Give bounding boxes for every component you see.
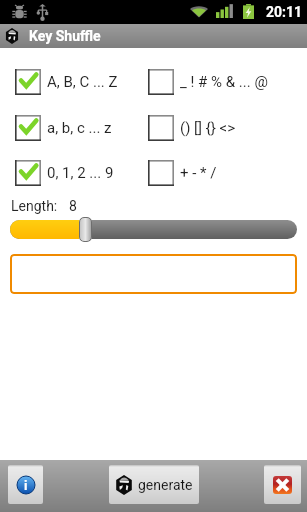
button[interactable]: A, B, C ... Z (15, 69, 118, 95)
staticText: i (24, 478, 28, 493)
staticText: Key Shuffle (29, 28, 101, 44)
button[interactable]: Length slider (79, 217, 92, 242)
button[interactable]: a, b, c ... z (15, 115, 112, 141)
staticText: _ ! # % & ... @ (180, 73, 268, 91)
staticText: a, b, c ... z (47, 119, 112, 137)
button[interactable]: Close (264, 465, 301, 504)
staticText: + - * / (180, 164, 217, 182)
button[interactable]: _ ! # % & ... @ (148, 69, 268, 95)
staticText: () [] {} <> (180, 119, 236, 137)
staticText: Length: (11, 198, 58, 214)
button[interactable]: Info (8, 465, 43, 504)
staticText: 0, 1, 2 ... 9 (47, 164, 114, 182)
staticText: 20:11 (266, 4, 303, 20)
button[interactable]: Generated key (10, 254, 297, 294)
button[interactable]: + - * / (148, 160, 217, 186)
staticText: A, B, C ... Z (47, 73, 118, 91)
button[interactable]: () [] {} <> (148, 115, 236, 141)
staticText: 8 (69, 198, 77, 214)
staticText: generate (138, 477, 193, 493)
button[interactable]: generate (109, 465, 199, 504)
button[interactable]: 0, 1, 2 ... 9 (15, 160, 114, 186)
